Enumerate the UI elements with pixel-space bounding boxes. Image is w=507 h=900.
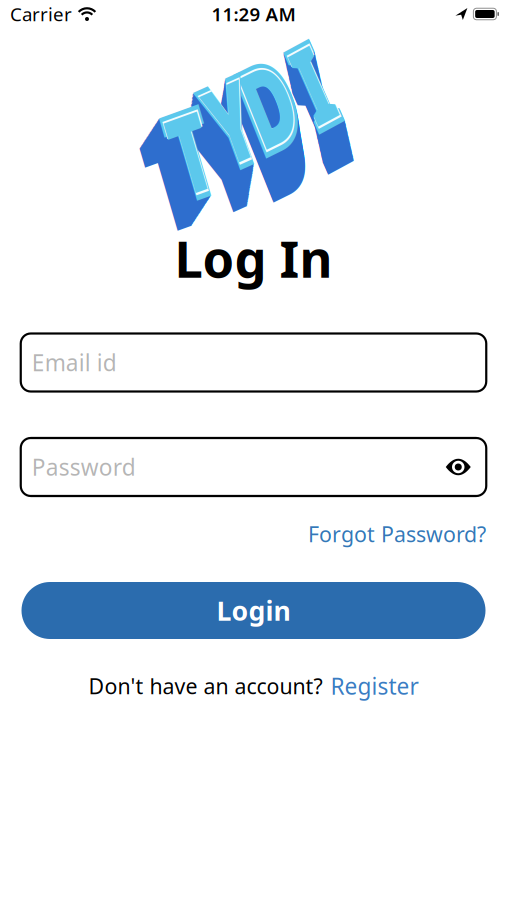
staticText: I (295, 46, 333, 159)
staticText: I (294, 49, 332, 162)
staticText: I (297, 42, 335, 155)
staticText: D (236, 57, 299, 170)
staticText: D (234, 64, 297, 177)
staticText: D (240, 47, 303, 161)
staticText: Register (330, 671, 418, 701)
staticText: I (301, 29, 339, 142)
staticText: T (147, 100, 197, 213)
staticText: T (141, 103, 191, 216)
staticText: I (296, 42, 334, 156)
staticText: T (134, 106, 184, 220)
staticText: Y (199, 66, 256, 179)
staticText: Y (189, 77, 246, 190)
staticText: Y (181, 85, 238, 198)
staticText: Y (198, 67, 255, 181)
staticText: I (299, 33, 337, 147)
staticText: Y (193, 72, 250, 186)
staticText: T (133, 107, 183, 220)
staticText: Y (183, 83, 240, 196)
staticText: Log In (174, 224, 332, 292)
staticText: T (158, 95, 208, 208)
staticText: T (150, 99, 200, 212)
staticText: D (237, 54, 300, 167)
staticText: Y (204, 70, 254, 171)
staticText: I (299, 35, 337, 149)
staticText: Password (32, 452, 136, 482)
staticText: D (236, 56, 299, 169)
staticText: I (297, 39, 335, 152)
staticText: 11:29 AM (211, 2, 295, 26)
staticText: I (301, 27, 339, 140)
staticText: T (149, 99, 199, 212)
staticText: Y (192, 74, 249, 187)
staticText: Y (178, 88, 235, 202)
staticText: T (140, 103, 190, 217)
staticText: Y (195, 71, 252, 184)
staticText: Forgot Password? (308, 520, 486, 548)
staticText: D (233, 66, 296, 179)
staticText: Y (182, 84, 239, 198)
staticText: D (236, 58, 299, 171)
staticText: D (231, 70, 294, 184)
staticText: T (162, 100, 207, 201)
staticText: Y (179, 87, 236, 201)
staticText: T (152, 98, 202, 211)
staticText: T (148, 100, 198, 213)
staticText: T (163, 103, 206, 199)
staticText: Y (205, 73, 253, 169)
staticText: I (296, 43, 334, 157)
staticText: D (235, 61, 298, 174)
staticText: D (231, 71, 294, 185)
button[interactable]: Login (21, 582, 485, 639)
staticText: T (142, 103, 192, 216)
staticText: Y (185, 81, 242, 194)
staticText: T (143, 102, 193, 215)
button[interactable]: Forgot Password? (308, 520, 486, 548)
staticText: T (135, 106, 185, 219)
staticText: I (304, 35, 336, 131)
staticText: Y (186, 79, 243, 193)
staticText: D (238, 51, 301, 164)
button[interactable]: Show password (443, 452, 473, 482)
staticText: T (129, 109, 179, 222)
staticText: I (293, 52, 331, 166)
staticText: D (232, 68, 295, 181)
staticText: Y (187, 79, 244, 192)
staticText: Y (193, 73, 250, 186)
staticText: D (234, 62, 297, 175)
staticText: T (157, 95, 207, 209)
staticText: I (293, 53, 331, 167)
staticText: T (151, 98, 201, 211)
staticText: D (231, 72, 294, 186)
staticText: Y (186, 80, 243, 194)
staticText: Y (180, 86, 237, 199)
staticText: I (296, 45, 334, 158)
staticText: Carrier (10, 2, 72, 26)
staticText: D (232, 69, 295, 182)
staticText: I (298, 36, 336, 149)
staticText: T (130, 108, 180, 222)
staticText: Y (201, 64, 258, 178)
staticText: D (233, 65, 296, 178)
staticText: I (301, 28, 339, 141)
staticText: D (239, 48, 302, 162)
staticText: D (239, 50, 302, 163)
staticText: I (297, 40, 335, 153)
staticText: T (146, 101, 196, 214)
staticText: Y (179, 87, 236, 200)
staticText: T (132, 107, 182, 221)
staticText: I (297, 41, 335, 154)
staticText: Y (196, 70, 253, 183)
staticText: D (238, 53, 301, 166)
staticText: T (155, 96, 205, 210)
staticText: Y (200, 65, 257, 178)
staticText: Y (199, 67, 256, 180)
button[interactable]: Register (330, 671, 418, 701)
staticText: D (230, 74, 293, 188)
staticText: Y (196, 69, 253, 182)
staticText: Y (184, 82, 241, 195)
staticText: D (240, 46, 303, 160)
staticText: I (294, 51, 332, 165)
staticText: Y (188, 78, 245, 191)
staticText: I (296, 44, 334, 158)
